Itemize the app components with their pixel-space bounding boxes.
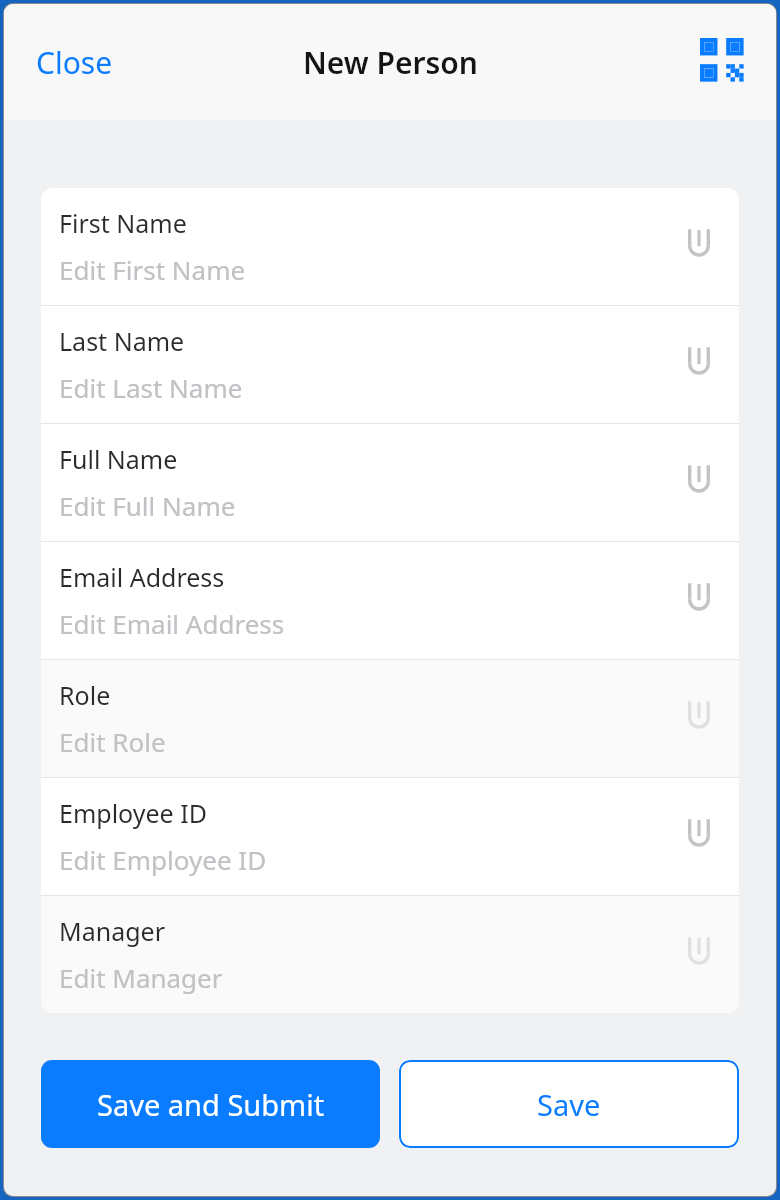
other: Attach file: [677, 579, 721, 623]
button[interactable]: Scan QR code: [698, 36, 750, 88]
staticText: Save: [537, 1085, 601, 1124]
button[interactable]: Save and Submit: [41, 1060, 380, 1148]
staticText: Edit Full Name: [59, 488, 236, 523]
button[interactable]: Manager: [41, 896, 739, 1013]
button[interactable]: Close: [26, 34, 123, 91]
other: Attach file: [677, 815, 721, 859]
button[interactable]: Email Address: [41, 542, 739, 659]
staticText: First Name: [59, 206, 187, 240]
staticText: Edit First Name: [59, 252, 246, 287]
button[interactable]: Full Name: [41, 424, 739, 541]
staticText: Edit Last Name: [59, 370, 243, 405]
staticText: New Person: [303, 42, 478, 83]
button[interactable]: Save: [399, 1060, 739, 1148]
other: Attach file: [677, 697, 721, 741]
staticText: Last Name: [59, 324, 185, 358]
staticText: Edit Role: [59, 724, 166, 759]
other: Attach file: [677, 343, 721, 387]
button[interactable]: Employee ID: [41, 778, 739, 895]
staticText: Email Address: [59, 560, 225, 594]
staticText: Close: [36, 42, 113, 83]
staticText: Save and Submit: [97, 1085, 325, 1124]
button[interactable]: First Name: [41, 188, 739, 305]
staticText: Edit Email Address: [59, 606, 285, 641]
button[interactable]: Last Name: [41, 306, 739, 423]
staticText: Employee ID: [59, 796, 207, 830]
staticText: Role: [59, 678, 111, 712]
staticText: Edit Employee ID: [59, 842, 267, 877]
other: Attach file: [677, 461, 721, 505]
staticText: Full Name: [59, 442, 178, 476]
button[interactable]: Role: [41, 660, 739, 777]
staticText: Manager: [59, 914, 165, 948]
other: Attach file: [677, 225, 721, 269]
other: Attach file: [677, 933, 721, 977]
staticText: Edit Manager: [59, 960, 223, 995]
